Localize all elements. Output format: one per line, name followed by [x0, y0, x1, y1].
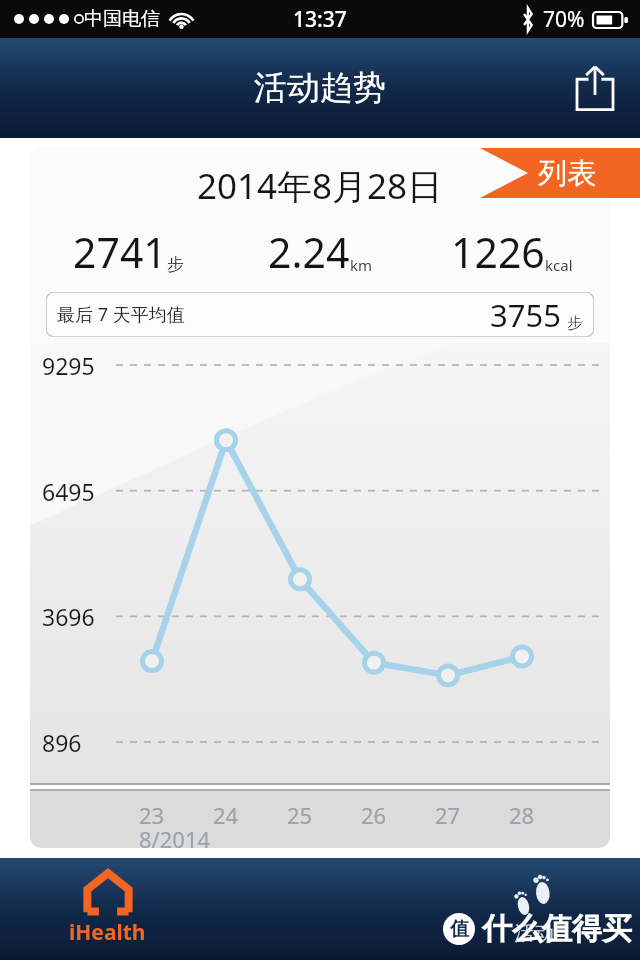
- staticText: 步: [567, 314, 582, 333]
- staticText: 活动趋势: [254, 67, 386, 109]
- staticText: 值: [450, 917, 469, 941]
- staticText: 6495: [42, 476, 95, 507]
- button[interactable]: 最后 7 天平均值: [46, 292, 594, 337]
- staticText: 2741: [73, 224, 167, 280]
- staticText: 列表: [538, 155, 596, 192]
- staticText: 23: [139, 800, 165, 830]
- staticText: 70%: [543, 5, 585, 34]
- staticText: 活动: [514, 921, 554, 946]
- staticText: 25: [287, 800, 313, 830]
- staticText: 27: [435, 800, 461, 830]
- staticText: 13:37: [293, 5, 347, 34]
- staticText: iHealth: [69, 918, 146, 947]
- staticText: 2.24: [268, 224, 350, 280]
- staticText: 3696: [42, 601, 95, 632]
- staticText: km: [350, 255, 373, 275]
- staticText: 什么值得买: [482, 910, 632, 948]
- staticText: kcal: [545, 255, 573, 275]
- button[interactable]: 列表: [480, 148, 640, 198]
- staticText: 26: [361, 800, 387, 830]
- staticText: 步: [167, 254, 184, 275]
- staticText: 896: [42, 727, 82, 758]
- button[interactable]: iHealth: [0, 858, 214, 960]
- staticText: 3755: [490, 294, 561, 336]
- staticText: 8/2014: [139, 824, 211, 848]
- staticText: 24: [213, 800, 239, 830]
- button[interactable]: Share: [566, 59, 624, 117]
- staticText: 9295: [42, 350, 95, 381]
- staticText: 28: [509, 800, 535, 830]
- staticText: 最后 7 天平均值: [57, 302, 185, 327]
- staticText: 中国电信: [84, 7, 160, 31]
- button[interactable]: 活动: [427, 858, 640, 960]
- staticText: 1226: [451, 224, 545, 280]
- staticText: 2014年8月28日: [197, 162, 443, 210]
